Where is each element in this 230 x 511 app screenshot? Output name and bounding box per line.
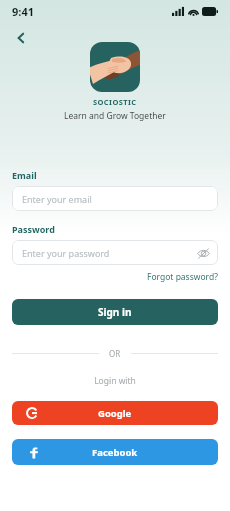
staticText: Email	[12, 169, 37, 181]
staticText: SOCIOSTIC	[93, 97, 137, 107]
button[interactable]: Show password	[194, 244, 212, 262]
staticText: Facebook	[92, 446, 138, 459]
button[interactable]: Sign in	[12, 299, 218, 325]
staticText: OR	[109, 348, 121, 359]
staticText: 9:41	[12, 4, 34, 19]
button[interactable]: Facebook	[12, 439, 218, 465]
staticText: Google	[98, 407, 132, 420]
staticText: Enter your email	[22, 193, 92, 205]
staticText: Password	[12, 223, 55, 235]
button[interactable]: Enter your password	[12, 240, 218, 265]
staticText: Login with	[12, 375, 218, 387]
staticText: Enter your password	[22, 247, 110, 259]
button[interactable]: Google	[12, 401, 218, 425]
staticText: Sign in	[98, 305, 132, 319]
staticText: Learn and Grow Together	[64, 110, 166, 122]
button[interactable]: Back	[8, 25, 34, 51]
button[interactable]: Enter your email	[12, 186, 218, 211]
button[interactable]: Forgot password?	[147, 271, 218, 283]
